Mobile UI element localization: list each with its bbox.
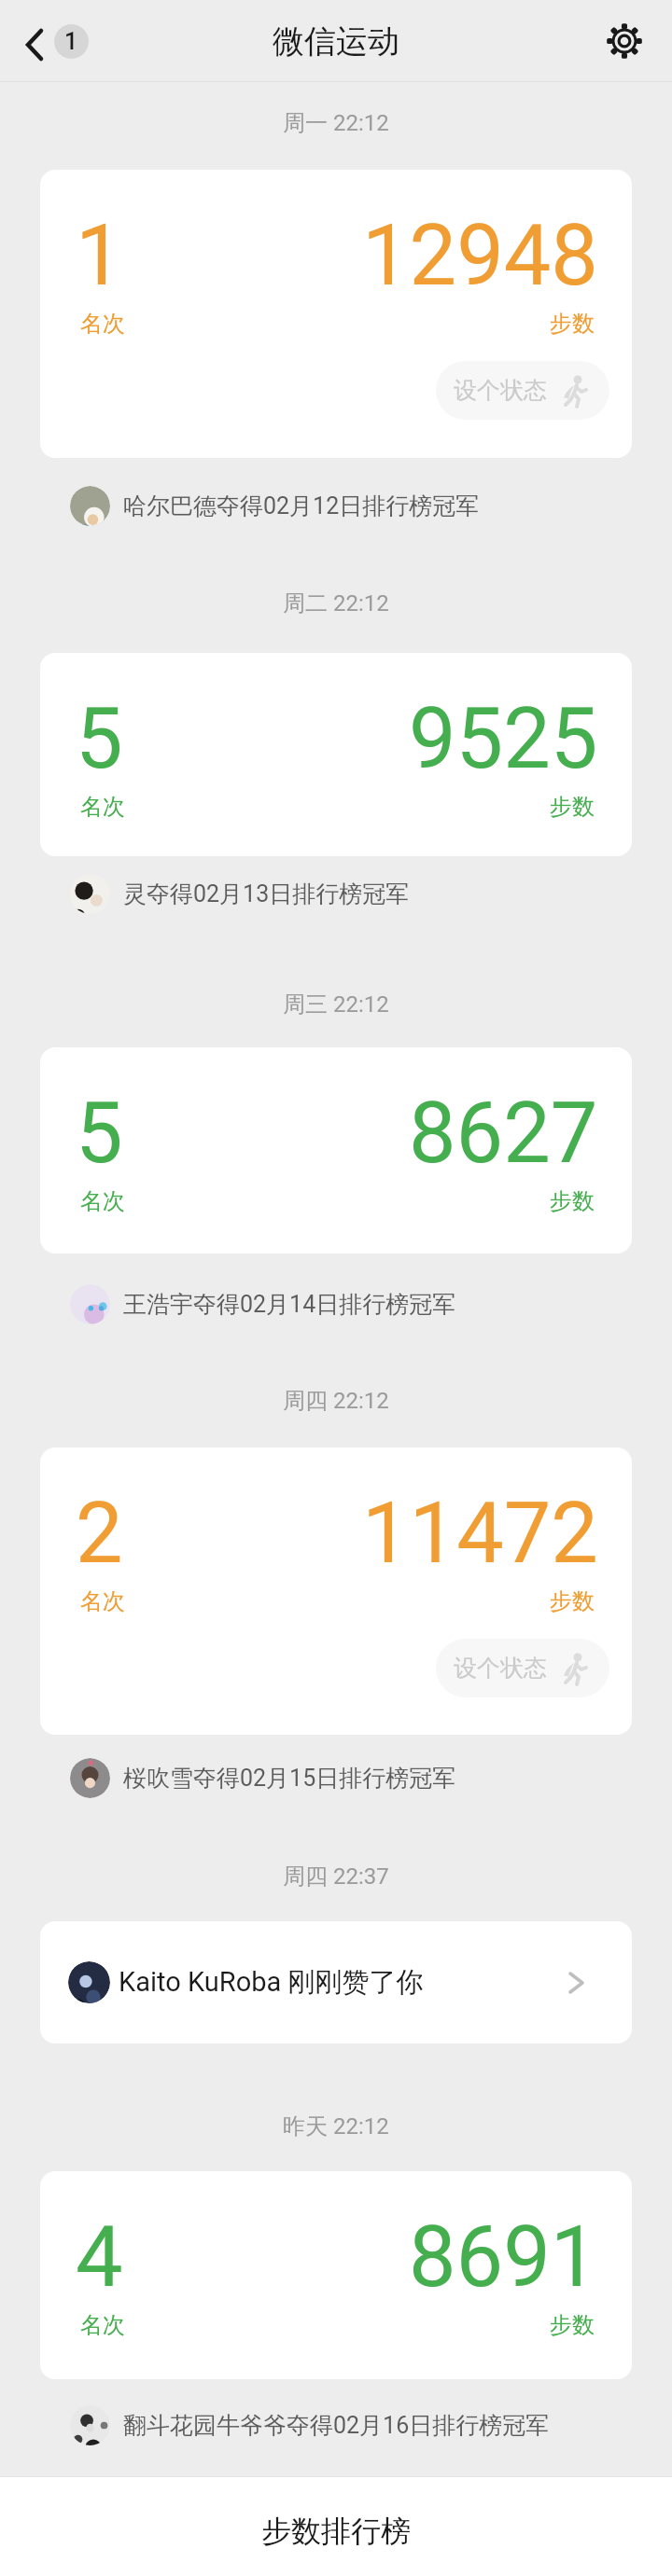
staticText: 设个状态	[454, 376, 547, 405]
staticText: 8691	[409, 2209, 598, 2306]
staticText: 步数	[550, 1587, 595, 1615]
staticText: 名次	[80, 1187, 125, 1215]
staticText: 周四 22:37	[283, 1863, 389, 1890]
staticText: 8627	[409, 1085, 598, 1183]
staticText: 桜吹雪夺得02月15日排行榜冠军	[123, 1764, 456, 1793]
staticText: 步数	[550, 310, 595, 338]
button[interactable]: 王浩宇夺得02月14日排行榜冠军	[70, 1283, 456, 1324]
button[interactable]	[604, 21, 645, 62]
staticText: 微信运动	[273, 21, 399, 62]
staticText: 设个状态	[454, 1654, 547, 1683]
staticText: 名次	[80, 793, 125, 821]
staticText: 1	[76, 207, 123, 305]
staticText: Kaito KuRoba 刚刚赞了你	[119, 1965, 424, 2000]
staticText: 5	[76, 690, 123, 788]
staticText: 步数排行榜	[261, 2513, 411, 2550]
button[interactable]: 桜吹雪夺得02月15日排行榜冠军	[70, 1757, 456, 1798]
staticText: 步数	[550, 1187, 595, 1215]
button[interactable]: 设个状态	[436, 1639, 609, 1697]
staticText: 步数	[550, 793, 595, 821]
staticText: 12948	[362, 207, 598, 305]
staticText: 5	[76, 1085, 123, 1183]
button[interactable]: 灵夺得02月13日排行榜冠军	[70, 873, 410, 914]
staticText: 周一 22:12	[283, 109, 389, 137]
staticText: 2	[76, 1485, 123, 1583]
staticText: 哈尔巴德夺得02月12日排行榜冠军	[123, 492, 480, 520]
staticText: 翻斗花园牛爷爷夺得02月16日排行榜冠军	[123, 2411, 550, 2440]
button[interactable]: 翻斗花园牛爷爷夺得02月16日排行榜冠军	[70, 2404, 550, 2445]
button[interactable]: 2	[40, 1447, 632, 1735]
button[interactable]: 4	[40, 2171, 632, 2379]
staticText: 名次	[80, 1587, 125, 1615]
staticText: 周三 22:12	[283, 990, 389, 1018]
button[interactable]: Kaito KuRoba 刚刚赞了你	[40, 1921, 632, 2043]
staticText: 昨天 22:12	[283, 2112, 389, 2140]
button[interactable]: 设个状态	[436, 361, 609, 420]
staticText: 周四 22:12	[283, 1387, 389, 1415]
button[interactable]: 1	[21, 19, 89, 63]
staticText: 11472	[362, 1485, 598, 1583]
staticText: 4	[76, 2209, 123, 2306]
button[interactable]: 5	[40, 653, 632, 856]
staticText: 名次	[80, 310, 125, 338]
staticText: 名次	[80, 2311, 125, 2339]
staticText: 9525	[409, 690, 598, 788]
staticText: 王浩宇夺得02月14日排行榜冠军	[123, 1290, 456, 1319]
button[interactable]: 步数排行榜	[0, 2476, 672, 2576]
staticText: 1	[64, 28, 78, 55]
staticText: 周二 22:12	[283, 589, 389, 617]
button[interactable]: 1	[40, 170, 632, 458]
button[interactable]: 5	[40, 1047, 632, 1253]
staticText: 步数	[550, 2311, 595, 2339]
button[interactable]: 哈尔巴德夺得02月12日排行榜冠军	[70, 485, 480, 526]
staticText: 灵夺得02月13日排行榜冠军	[123, 879, 410, 908]
